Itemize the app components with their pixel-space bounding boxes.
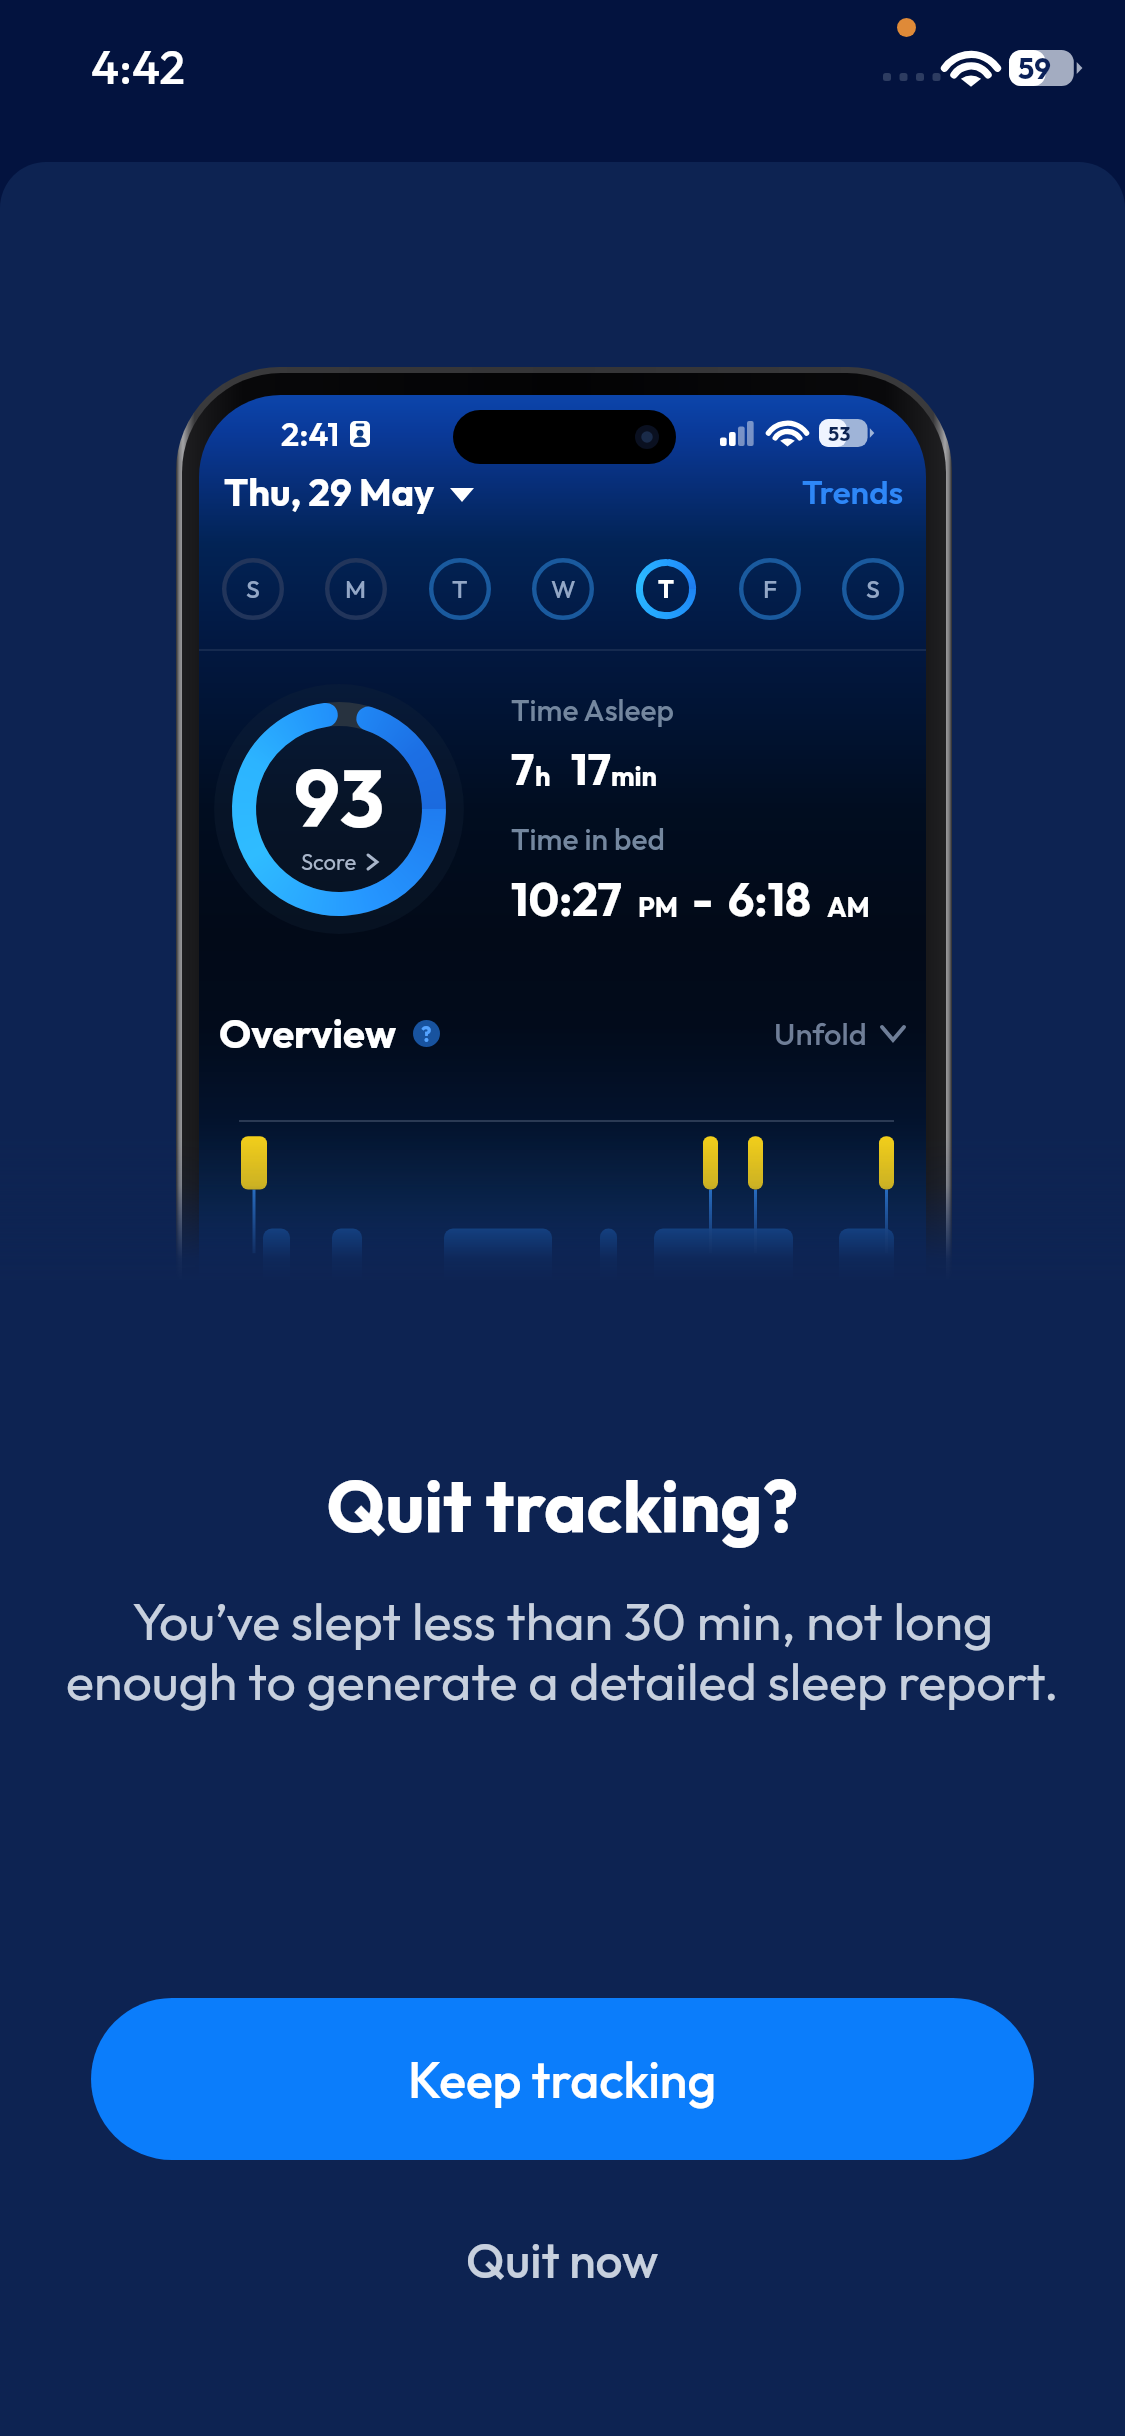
staticText: Thu, 29 May xyxy=(224,468,435,516)
staticText: Trends xyxy=(802,471,904,513)
button[interactable]: Quit now xyxy=(416,2208,709,2312)
staticText: 59 xyxy=(1018,50,1051,86)
staticText: 93 xyxy=(294,747,385,848)
staticText: S xyxy=(866,573,880,605)
staticText: Quit tracking? xyxy=(0,1460,1125,1551)
staticText: T xyxy=(658,573,674,605)
staticText: ? xyxy=(421,1021,432,1047)
staticText: You’ve slept less than 30 min, not long … xyxy=(57,1588,1068,1713)
staticText: Unfold xyxy=(774,1014,867,1053)
staticText: M xyxy=(345,573,367,605)
staticText: min xyxy=(611,759,658,793)
staticText: 2:41 xyxy=(281,413,340,455)
staticText: 10:27 xyxy=(511,870,622,928)
staticText: 4:42 xyxy=(91,37,185,96)
staticText: Time in bed xyxy=(511,820,665,858)
staticText: h xyxy=(535,759,551,793)
staticText: 53 xyxy=(828,421,851,446)
staticText: F xyxy=(763,573,778,605)
staticText: Quit now xyxy=(466,2230,659,2290)
staticText: W xyxy=(551,573,576,605)
staticText: 6:18 xyxy=(728,870,811,928)
staticText: Time Asleep xyxy=(511,691,674,729)
staticText: S xyxy=(246,573,260,605)
staticText: PM xyxy=(638,890,678,924)
button[interactable]: Help xyxy=(413,1020,440,1047)
staticText: Overview xyxy=(219,1008,397,1058)
staticText: 7 xyxy=(511,741,535,796)
staticText: - xyxy=(692,870,714,928)
button[interactable]: Keep tracking xyxy=(91,1998,1034,2160)
staticText: 17 xyxy=(571,741,611,796)
staticText: Score xyxy=(301,848,357,876)
staticText: AM xyxy=(827,890,870,924)
staticText: T xyxy=(452,573,468,605)
staticText: Keep tracking xyxy=(408,2048,717,2111)
